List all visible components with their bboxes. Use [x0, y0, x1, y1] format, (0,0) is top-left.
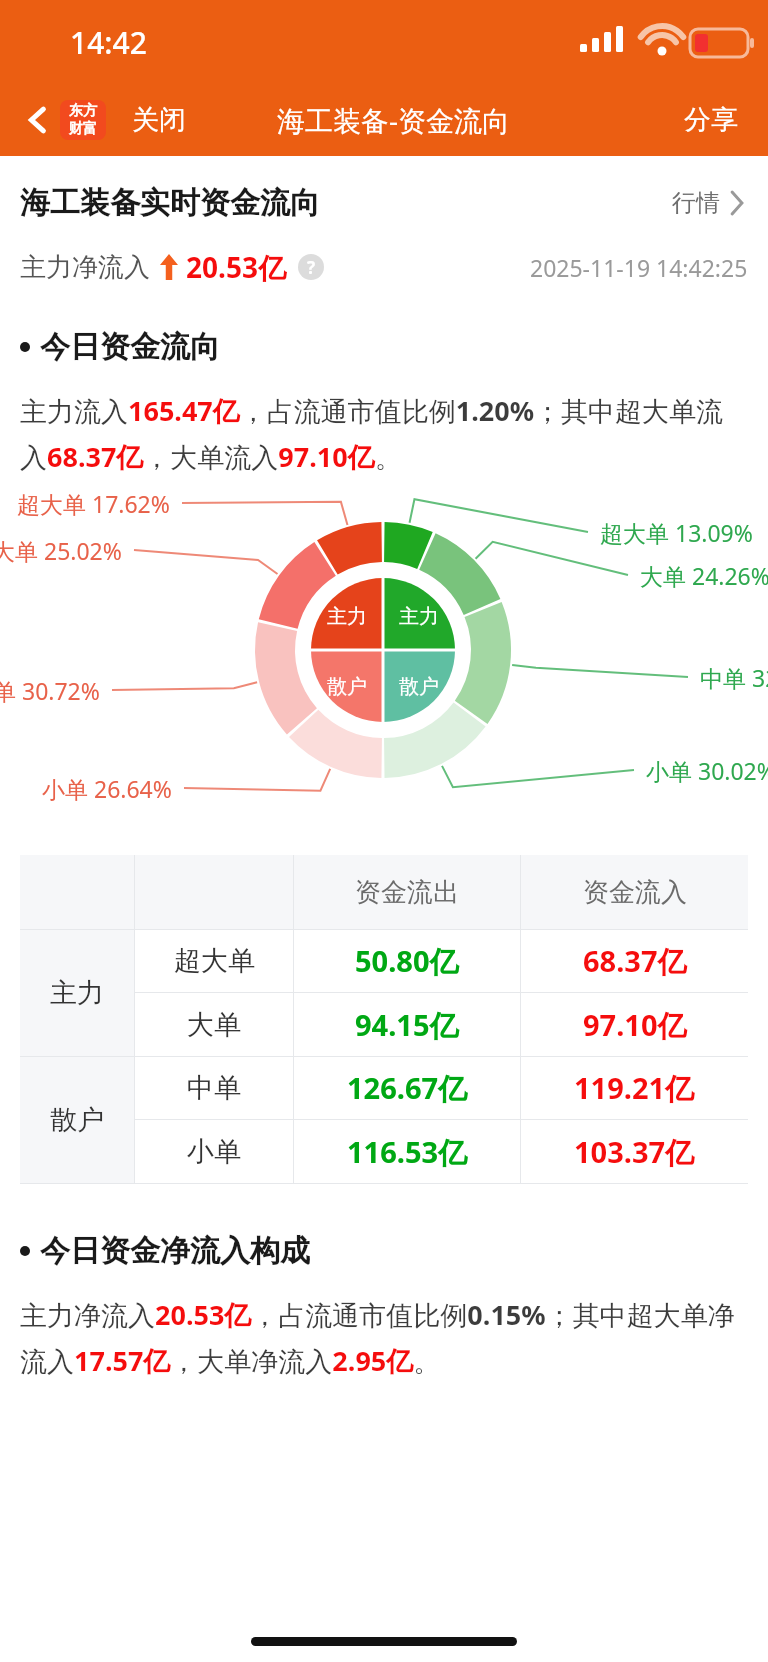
- staticText: 大单: [187, 1008, 241, 1042]
- staticText: 50.80亿: [355, 941, 459, 981]
- staticText: 分享: [684, 103, 738, 137]
- staticText: 主力净流入: [20, 251, 150, 284]
- staticText: 主力流入165.47亿，占流通市值比例1.20%；其中超大单流入68.37亿，大…: [20, 392, 748, 475]
- staticText: 116.53亿: [347, 1132, 468, 1172]
- staticText: 119.21亿: [574, 1068, 695, 1108]
- staticText: 主力净流入20.53亿，占流通市值比例0.15%；其中超大单净流入17.57亿，…: [20, 1296, 748, 1379]
- staticText: ?: [307, 256, 316, 279]
- staticText: 今日资金流向: [40, 328, 220, 366]
- staticText: 94.15亿: [355, 1005, 459, 1045]
- staticText: 小单: [187, 1135, 241, 1169]
- staticText: 海工装备实时资金流向: [20, 184, 320, 222]
- staticText: 68.37亿: [583, 941, 687, 981]
- staticText: 中单: [187, 1071, 241, 1105]
- staticText: 今日资金净流入构成: [40, 1232, 310, 1270]
- staticText: 资金流出: [355, 876, 459, 909]
- staticText: 资金流入: [583, 876, 687, 909]
- button[interactable]: 分享: [680, 99, 742, 141]
- staticText: 主力: [50, 976, 104, 1010]
- button[interactable]: 海工装备-资金流向: [277, 101, 511, 139]
- staticText: 关闭: [132, 103, 186, 137]
- button[interactable]: 东方财富: [60, 100, 106, 140]
- button[interactable]: 行情: [668, 184, 748, 222]
- staticText: 103.37亿: [574, 1132, 695, 1172]
- button[interactable]: 说明: [298, 254, 324, 280]
- staticText: 20.53亿: [186, 248, 286, 286]
- staticText: 财富: [69, 120, 97, 138]
- staticText: 2025-11-19 14:42:25: [530, 252, 748, 283]
- staticText: 散户: [50, 1103, 104, 1137]
- staticText: 海工装备-资金流向: [277, 101, 511, 139]
- staticText: 97.10亿: [583, 1005, 687, 1045]
- button[interactable]: Back: [16, 98, 60, 142]
- staticText: 超大单: [174, 944, 255, 978]
- button[interactable]: 关闭: [128, 95, 190, 145]
- staticText: 行情: [672, 188, 720, 218]
- staticText: 东方: [69, 102, 97, 120]
- staticText: 126.67亿: [347, 1068, 468, 1108]
- staticText: 14:42: [70, 22, 147, 63]
